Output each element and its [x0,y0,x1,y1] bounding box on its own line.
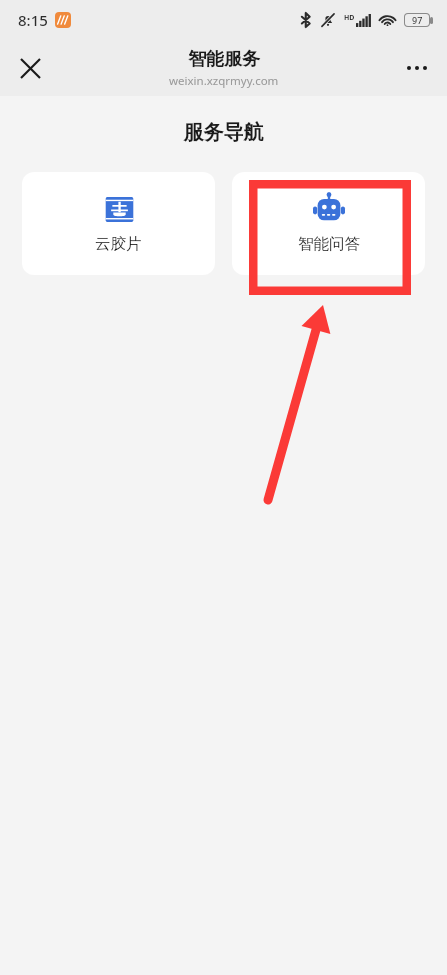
staticText: 智能服务 [188,48,260,71]
button[interactable]: 云胶片 [22,172,215,275]
staticText: 8:15 [18,10,48,30]
button[interactable]: More options [395,46,439,90]
staticText: weixin.xzqrmyy.com [169,73,279,89]
staticText: 97 [412,14,423,26]
staticText: HD [344,13,355,23]
button[interactable]: 智能问答 [232,172,425,275]
staticText: 智能问答 [298,234,360,254]
button[interactable]: Close [8,46,52,90]
staticText: 服务导航 [0,120,447,145]
staticText: 云胶片 [95,234,142,254]
